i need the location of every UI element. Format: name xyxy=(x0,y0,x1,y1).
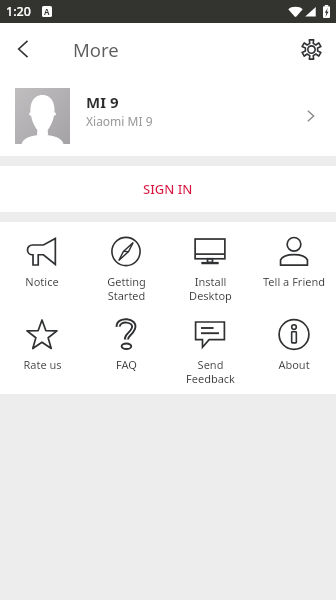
staticText: Xiaomi MI 9 xyxy=(86,113,153,129)
staticText: Install Desktop xyxy=(189,274,232,303)
button[interactable]: About xyxy=(252,305,336,394)
staticText: Notice xyxy=(25,274,59,289)
button[interactable]: SIGN IN xyxy=(0,166,336,212)
button[interactable]: MI 9 xyxy=(0,75,336,156)
staticText: Rate us xyxy=(23,357,62,372)
button[interactable]: Settings xyxy=(290,26,333,72)
button[interactable]: Back xyxy=(0,26,46,72)
staticText: A xyxy=(44,6,50,17)
button[interactable]: Notice xyxy=(0,222,84,305)
staticText: SIGN IN xyxy=(143,180,193,198)
button[interactable]: Send Feedback xyxy=(168,305,252,394)
staticText: About xyxy=(278,357,310,372)
staticText: Tell a Friend xyxy=(263,274,325,289)
staticText: 1:20 xyxy=(6,3,31,20)
button[interactable]: Rate us xyxy=(0,305,84,394)
button[interactable]: Tell a Friend xyxy=(252,222,336,305)
staticText: MI 9 xyxy=(86,92,119,112)
staticText: FAQ xyxy=(116,357,137,372)
button[interactable]: Getting Started xyxy=(84,222,168,305)
button[interactable]: FAQ xyxy=(84,305,168,394)
staticText: Getting Started xyxy=(107,274,146,303)
staticText: Send Feedback xyxy=(186,357,235,386)
staticText: More xyxy=(73,37,119,62)
button[interactable]: Install Desktop xyxy=(168,222,252,305)
